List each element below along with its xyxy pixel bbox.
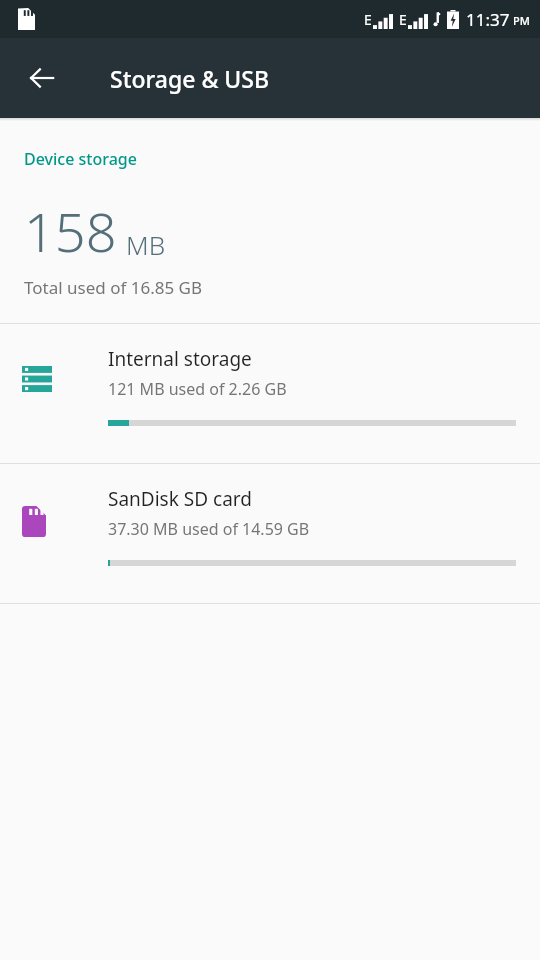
staticText: Storage & USB xyxy=(110,63,269,94)
staticText: E xyxy=(399,10,407,29)
staticText: PM xyxy=(513,13,530,28)
staticText: 37.30 MB used of 14.59 GB xyxy=(108,518,310,540)
staticText: E xyxy=(364,10,372,29)
staticText: MB xyxy=(126,227,166,262)
staticText: Device storage xyxy=(24,148,137,170)
staticText: 121 MB used of 2.26 GB xyxy=(108,378,287,400)
button[interactable]: Internal storage xyxy=(0,324,540,463)
staticText: 158 xyxy=(24,194,117,268)
button[interactable]: Back xyxy=(14,50,70,106)
button[interactable]: SanDisk SD card xyxy=(0,464,540,603)
staticText: SanDisk SD card xyxy=(108,486,252,512)
staticText: Internal storage xyxy=(108,346,252,372)
staticText: 11:37 xyxy=(466,8,510,31)
staticText: Total used of 16.85 GB xyxy=(24,276,202,299)
